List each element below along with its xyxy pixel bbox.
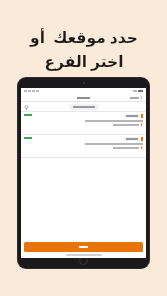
staticText: اختر الفرع	[44, 50, 124, 71]
button[interactable]	[21, 135, 146, 157]
button[interactable]: Map	[24, 105, 29, 110]
staticText: حدد موقعك أو	[30, 26, 138, 47]
button[interactable]	[24, 242, 143, 252]
button[interactable]	[21, 112, 146, 134]
button[interactable]	[69, 104, 99, 110]
button[interactable]: Back	[130, 96, 143, 99]
